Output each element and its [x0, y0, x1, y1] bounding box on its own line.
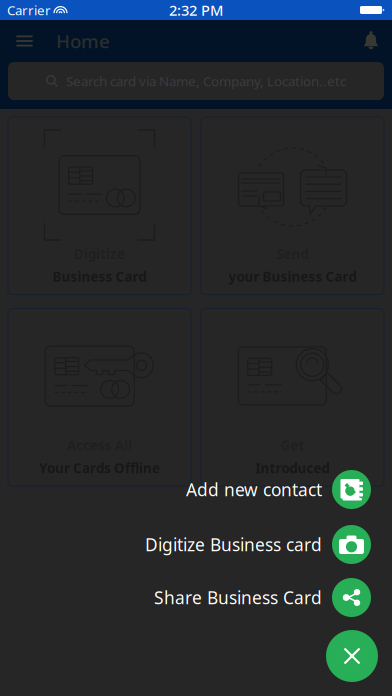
- button[interactable]: Search card via Name, Company, Location.…: [8, 62, 384, 100]
- staticText: 2:32 PM: [169, 0, 223, 20]
- staticText: Search card via Name, Company, Location.…: [66, 72, 346, 90]
- button[interactable]: Notifications: [355, 20, 384, 62]
- button[interactable]: Access All: [8, 308, 191, 486]
- staticText: Introduced: [255, 459, 329, 477]
- button[interactable]: Add new contact: [0, 470, 392, 509]
- button[interactable]: Digitize Business card: [0, 525, 392, 564]
- staticText: your Business Card: [228, 268, 356, 285]
- button[interactable]: Menu: [8, 23, 41, 58]
- button[interactable]: Share Business Card: [0, 578, 392, 617]
- staticText: Share Business Card: [154, 586, 322, 609]
- staticText: Digitize Business card: [145, 533, 322, 556]
- staticText: Home: [56, 29, 110, 53]
- button[interactable]: Close menu: [326, 630, 378, 682]
- staticText: Carrier: [7, 1, 51, 19]
- button[interactable]: Get: [201, 308, 384, 486]
- staticText: Your Cards Offline: [39, 459, 160, 477]
- staticText: Add new contact: [186, 478, 322, 501]
- staticText: Business Card: [52, 268, 146, 285]
